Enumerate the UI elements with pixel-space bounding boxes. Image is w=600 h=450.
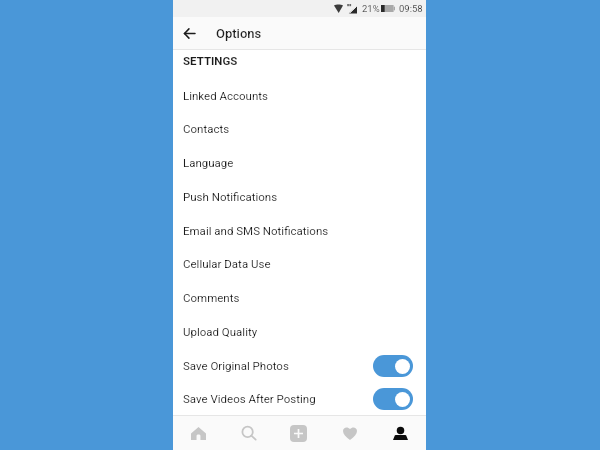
staticText: 21%	[362, 3, 380, 14]
staticText: Upload Quality	[183, 325, 258, 338]
button[interactable]: Push Notifications	[173, 179, 426, 213]
button[interactable]: Home	[173, 416, 223, 450]
button[interactable]: Activity	[324, 416, 375, 450]
button[interactable]: Upload Quality	[173, 314, 426, 348]
button[interactable]: Comments	[173, 280, 426, 314]
button[interactable]: Add post	[273, 416, 324, 450]
button[interactable]: Contacts	[173, 111, 426, 145]
staticText: Language	[183, 156, 234, 169]
staticText: Linked Accounts	[183, 89, 268, 102]
staticText: Cellular Data Use	[183, 257, 271, 270]
button[interactable]: Language	[173, 145, 426, 179]
staticText: Push Notifications	[183, 190, 278, 203]
button[interactable]: Back	[173, 17, 205, 49]
staticText: Email and SMS Notifications	[183, 224, 329, 237]
button[interactable]: Email and SMS Notifications	[173, 213, 426, 247]
staticText: 09:58	[399, 3, 423, 14]
staticText: Options	[216, 26, 262, 41]
staticText: Save Original Photos	[183, 359, 373, 372]
button[interactable]: Save Videos After Posting	[173, 381, 426, 415]
button[interactable]: Profile	[375, 416, 426, 450]
staticText: SETTINGS	[183, 54, 238, 67]
button[interactable]: Linked Accounts	[173, 78, 426, 112]
staticText: Save Videos After Posting	[183, 392, 373, 405]
button[interactable]: Search	[223, 416, 273, 450]
button[interactable]: Cellular Data Use	[173, 246, 426, 280]
staticText: Contacts	[183, 122, 230, 135]
button[interactable]: Save Original Photos	[173, 348, 426, 382]
staticText: Comments	[183, 291, 240, 304]
